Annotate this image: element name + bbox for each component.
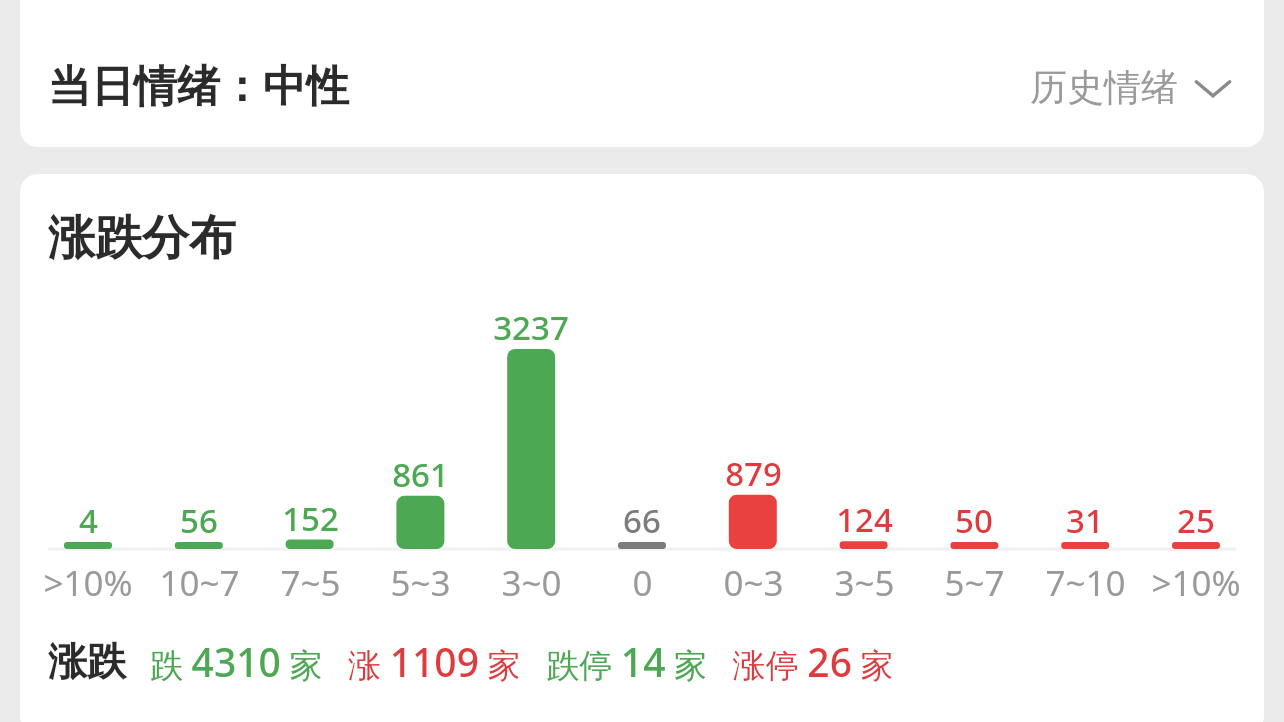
staticText: 跌 4310 家 涨 1109 家 跌停 14 家 涨停 26 家: [150, 635, 894, 688]
staticText: 56: [180, 498, 218, 543]
staticText: 历史情绪: [1030, 64, 1178, 111]
staticText: 10~7: [159, 559, 240, 607]
staticText: 5~3: [390, 559, 451, 607]
staticText: 879: [725, 451, 782, 496]
other: 展开历史情绪: [1194, 75, 1232, 101]
staticText: 5~7: [944, 559, 1005, 607]
staticText: 涨跌: [48, 637, 126, 686]
staticText: 50: [955, 498, 993, 543]
staticText: 3237: [493, 305, 569, 350]
staticText: 152: [282, 496, 339, 541]
button[interactable]: 当日情绪：中性: [20, 0, 1264, 147]
staticText: 当日情绪：中性: [48, 60, 349, 114]
staticText: 7~10: [1045, 559, 1126, 607]
staticText: >10%: [43, 559, 133, 607]
staticText: 124: [836, 497, 893, 542]
staticText: 4: [79, 498, 98, 543]
staticText: 31: [1066, 498, 1104, 543]
staticText: 25: [1177, 498, 1215, 543]
staticText: >10%: [1151, 559, 1241, 607]
staticText: 66: [623, 498, 661, 543]
staticText: 3~0: [501, 559, 562, 607]
staticText: 0~3: [723, 559, 784, 607]
staticText: 3~5: [834, 559, 895, 607]
staticText: 0: [632, 559, 653, 607]
button[interactable]: 历史情绪: [1024, 56, 1238, 119]
button[interactable]: 涨跌: [48, 626, 1244, 696]
staticText: 涨跌分布: [48, 209, 236, 268]
staticText: 861: [392, 452, 449, 497]
staticText: 7~5: [280, 559, 341, 607]
